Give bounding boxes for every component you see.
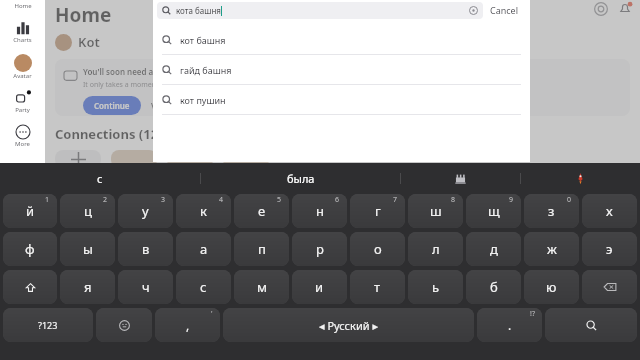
button[interactable]: Backspace	[582, 270, 637, 304]
button[interactable]: д	[466, 232, 521, 266]
staticText: е	[258, 202, 266, 220]
staticText: а	[200, 240, 208, 258]
staticText: 6	[335, 195, 340, 205]
button[interactable]: Cancel	[483, 4, 526, 16]
button[interactable]: э	[582, 232, 637, 266]
staticText: 4	[219, 195, 224, 205]
button[interactable]: View	[151, 100, 170, 111]
staticText: кот пушин	[180, 94, 226, 106]
staticText: д	[490, 240, 498, 258]
button[interactable]: й	[3, 194, 57, 228]
staticText: 3	[161, 195, 166, 205]
button[interactable]	[111, 150, 157, 168]
button[interactable]: ч	[118, 270, 173, 304]
staticText: п	[258, 240, 266, 258]
button[interactable]: л	[408, 232, 463, 266]
button[interactable]	[401, 163, 520, 193]
button[interactable]: и	[292, 270, 347, 304]
button[interactable]: ц	[60, 194, 115, 228]
staticText: ь	[432, 278, 440, 296]
staticText: '	[211, 309, 213, 319]
button[interactable]: е	[234, 194, 289, 228]
button[interactable]	[521, 163, 640, 193]
button[interactable]: You'll soon need a verified account	[55, 59, 630, 116]
button[interactable]: Charts	[0, 10, 45, 44]
button[interactable]: я	[60, 270, 115, 304]
staticText: ◂ Русский ▸	[319, 318, 378, 333]
button[interactable]: Home	[0, 0, 45, 10]
button[interactable]: т	[350, 270, 405, 304]
button[interactable]: с	[0, 163, 200, 193]
button[interactable]: ь	[408, 270, 463, 304]
button[interactable]: з	[524, 194, 579, 228]
button[interactable]	[55, 150, 101, 168]
button[interactable]: кот башня	[153, 25, 530, 55]
staticText: ю	[546, 278, 557, 296]
button[interactable]: ы	[60, 232, 115, 266]
button[interactable]: Shift	[3, 270, 57, 304]
button[interactable]: м	[234, 270, 289, 304]
button[interactable]	[167, 150, 213, 168]
staticText: .	[508, 317, 512, 333]
button[interactable]: Search	[545, 308, 637, 342]
staticText: й	[26, 202, 35, 220]
staticText: 7	[393, 195, 398, 205]
button[interactable]: р	[292, 232, 347, 266]
button[interactable]: была	[201, 163, 400, 193]
button[interactable]: о	[350, 232, 405, 266]
staticText: ?123	[38, 319, 58, 331]
staticText: э	[606, 240, 613, 258]
staticText: Cancel	[490, 4, 519, 16]
staticText: Home	[55, 2, 112, 28]
button[interactable]: ю	[524, 270, 579, 304]
staticText: 8	[451, 195, 456, 205]
staticText: Avatar	[13, 72, 32, 80]
button[interactable]: .	[477, 308, 542, 342]
button[interactable]: ф	[3, 232, 57, 266]
staticText: б	[490, 278, 498, 296]
button[interactable]: щ	[466, 194, 521, 228]
staticText: кот башня	[180, 34, 226, 46]
staticText: It only takes a moment to set up.	[83, 80, 192, 90]
button[interactable]: ◂ Русский ▸	[223, 308, 474, 342]
staticText: в	[142, 240, 150, 258]
button[interactable]: ,	[155, 308, 220, 342]
staticText: м	[257, 278, 267, 296]
staticText: 9	[509, 195, 514, 205]
staticText: ж	[547, 240, 557, 258]
button[interactable]: ж	[524, 232, 579, 266]
button[interactable]: г	[350, 194, 405, 228]
button[interactable]: кот пушин	[153, 85, 530, 115]
staticText: ш	[430, 202, 442, 220]
button[interactable]: Avatar	[0, 44, 45, 80]
button[interactable]	[223, 150, 269, 168]
staticText: была	[287, 171, 315, 186]
button[interactable]: More	[0, 114, 45, 148]
button[interactable]: Continue	[83, 96, 141, 115]
staticText: Continue	[94, 100, 130, 111]
button[interactable]: кота башня	[157, 2, 483, 19]
staticText: Connections (127)	[55, 125, 170, 143]
staticText: з	[548, 202, 555, 220]
button[interactable]: Notifications	[618, 2, 632, 16]
button[interactable]: ш	[408, 194, 463, 228]
button[interactable]: Clear	[469, 6, 478, 15]
button[interactable]: Party	[0, 80, 45, 114]
button[interactable]: н	[292, 194, 347, 228]
button[interactable]: х	[582, 194, 637, 228]
button[interactable]: б	[466, 270, 521, 304]
staticText: View	[151, 100, 170, 111]
staticText: х	[606, 202, 613, 220]
button[interactable]: Settings	[594, 2, 608, 16]
button[interactable]: п	[234, 232, 289, 266]
button[interactable]: у	[118, 194, 173, 228]
button[interactable]: Emoji	[96, 308, 152, 342]
button[interactable]: с	[176, 270, 231, 304]
staticText: ы	[83, 240, 93, 258]
staticText: 2	[103, 195, 108, 205]
button[interactable]: гайд башня	[153, 55, 530, 85]
button[interactable]: а	[176, 232, 231, 266]
button[interactable]: к	[176, 194, 231, 228]
button[interactable]: ?123	[3, 308, 93, 342]
button[interactable]: в	[118, 232, 173, 266]
